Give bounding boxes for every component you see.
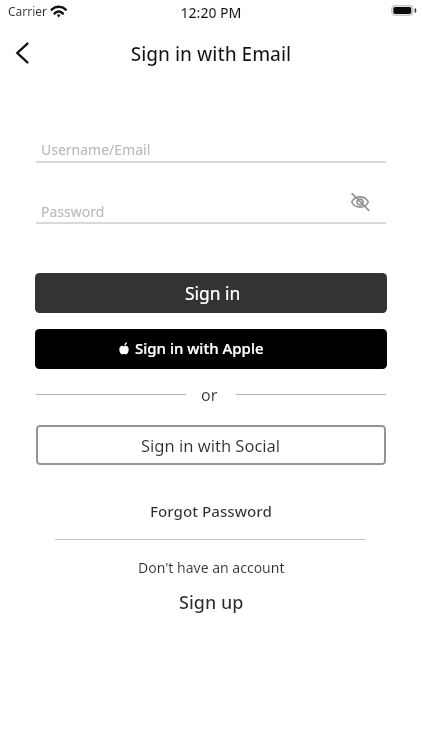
staticText: Password <box>41 202 105 221</box>
staticText: Sign in with Email <box>0 41 422 67</box>
button[interactable]: Sign in <box>35 273 387 313</box>
staticText: Carrier <box>8 3 48 19</box>
staticText: Sign in <box>185 281 241 305</box>
button[interactable]: Sign up <box>161 589 261 615</box>
staticText: Sign in with Apple <box>135 338 264 358</box>
button[interactable]: Show password <box>346 188 374 216</box>
staticText: Sign up <box>179 590 244 615</box>
staticText: 12:20 PM <box>0 3 422 22</box>
button[interactable]: Forgot Password <box>131 498 291 524</box>
staticText: Forgot Password <box>150 501 272 522</box>
button[interactable]: Sign in with Social <box>36 425 386 465</box>
button[interactable]: Back <box>2 32 44 74</box>
staticText: Don't have an account <box>138 558 285 577</box>
button[interactable]: Sign in with Apple <box>35 329 387 369</box>
staticText: Sign in with Social <box>141 434 281 456</box>
staticText: Username/Email <box>41 140 151 159</box>
staticText: or <box>201 384 218 406</box>
